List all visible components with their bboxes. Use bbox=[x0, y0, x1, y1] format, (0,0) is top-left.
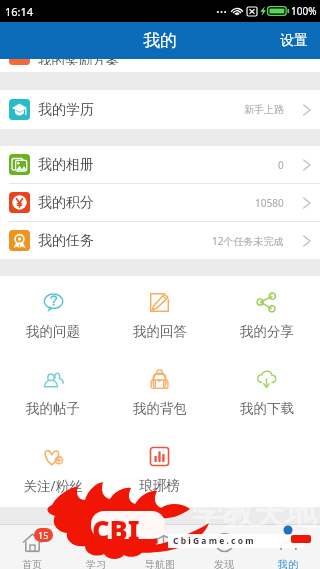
button[interactable]: 我的积分 bbox=[0, 184, 320, 221]
button[interactable]: 15 bbox=[0, 525, 64, 569]
button[interactable]: 我的任务 bbox=[0, 222, 320, 259]
staticText: 0 bbox=[278, 158, 284, 172]
button[interactable]: 我的问题 bbox=[0, 276, 106, 353]
staticText: 发现 bbox=[214, 558, 234, 569]
button[interactable]: 我的背包 bbox=[106, 353, 213, 430]
staticText: 首页 bbox=[22, 558, 42, 569]
staticText: 我的奖励方案 bbox=[38, 59, 119, 65]
staticText: 我的帖子 bbox=[26, 400, 80, 417]
staticText: 学教天地 bbox=[192, 494, 316, 533]
staticText: 16:14 bbox=[5, 4, 34, 19]
staticText: 我的任务 bbox=[38, 232, 94, 250]
staticText: 我的积分 bbox=[38, 194, 94, 212]
staticText: 我的回答 bbox=[133, 323, 187, 340]
button[interactable]: 学习 bbox=[64, 525, 128, 569]
staticText: C b i G a m e . c o m bbox=[173, 535, 254, 547]
staticText: 10580 bbox=[255, 196, 284, 210]
staticText: 我的问题 bbox=[26, 323, 80, 340]
staticText: 新手上路 bbox=[244, 103, 284, 116]
staticText: 我的 bbox=[278, 558, 298, 569]
button[interactable]: 我的回答 bbox=[106, 276, 213, 353]
staticText: 15 bbox=[38, 529, 49, 541]
staticText: 我的分享 bbox=[240, 323, 294, 340]
staticText: 100% bbox=[291, 4, 317, 18]
button[interactable]: 导航图 bbox=[128, 525, 192, 569]
staticText: CBI bbox=[92, 511, 140, 548]
button[interactable]: 我的下载 bbox=[213, 353, 320, 430]
button[interactable]: 琅琊榜 bbox=[106, 430, 213, 507]
button[interactable]: 我的学历 bbox=[0, 90, 320, 129]
button[interactable]: 我的分享 bbox=[213, 276, 320, 353]
staticText: 12个任务未完成 bbox=[212, 234, 284, 248]
staticText: 我的背包 bbox=[133, 400, 187, 417]
button[interactable]: 我的相册 bbox=[0, 146, 320, 183]
button[interactable]: 我的帖子 bbox=[0, 353, 106, 430]
staticText: 琅琊榜 bbox=[139, 477, 180, 494]
staticText: 关注/粉丝 bbox=[23, 477, 83, 495]
staticText: 学习 bbox=[86, 558, 106, 569]
staticText: 我的 bbox=[143, 30, 177, 51]
button[interactable]: 我的 bbox=[256, 525, 320, 569]
staticText: 导航图 bbox=[145, 558, 175, 569]
button[interactable]: 设置 bbox=[268, 22, 320, 59]
staticText: 我的学历 bbox=[38, 101, 94, 119]
button[interactable]: 关注/粉丝 bbox=[0, 430, 106, 507]
button[interactable]: 发现 bbox=[192, 525, 256, 569]
staticText: 设置 bbox=[280, 32, 308, 50]
staticText: 我的相册 bbox=[38, 156, 94, 174]
staticText: 我的下载 bbox=[240, 400, 294, 417]
